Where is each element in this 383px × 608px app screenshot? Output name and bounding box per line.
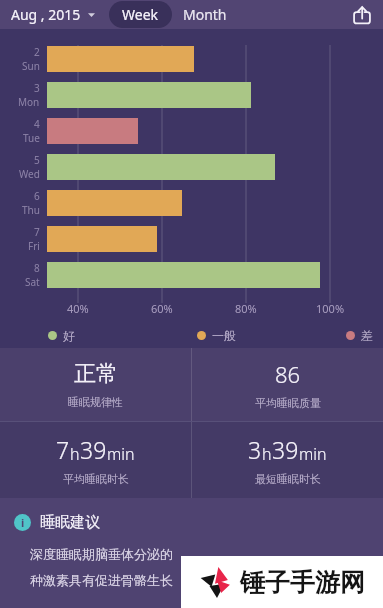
button[interactable]: 6 (0, 185, 383, 221)
staticText: Aug , 2015 (11, 5, 81, 24)
staticText: h (70, 443, 80, 465)
button[interactable]: 8 (0, 257, 383, 293)
button[interactable]: 2 (0, 41, 383, 77)
staticText: 39 (80, 434, 107, 465)
staticText: 7 (34, 225, 40, 239)
staticText: 好 (63, 328, 75, 342)
staticText: i (21, 515, 25, 530)
staticText: 80% (235, 301, 257, 316)
staticText: h (262, 443, 272, 465)
staticText: Wed (19, 167, 40, 181)
button[interactable]: 4 (0, 113, 383, 149)
staticText: 5 (34, 153, 40, 167)
button[interactable]: Week (109, 1, 172, 28)
button[interactable]: 86 (192, 348, 383, 421)
staticText: 100% (316, 301, 345, 316)
staticText: 睡眠建议 (40, 513, 100, 532)
button[interactable]: Month (172, 1, 238, 28)
staticText: Fri (28, 239, 40, 253)
button[interactable]: Aug , 2015 (8, 1, 98, 28)
staticText: 平均睡眠质量 (255, 396, 321, 410)
staticText: Thu (22, 203, 40, 217)
button[interactable]: Share (345, 0, 379, 29)
staticText: Sun (22, 59, 40, 73)
staticText: Tue (23, 131, 40, 145)
button[interactable]: 7 (0, 422, 191, 498)
staticText: 40% (67, 301, 89, 316)
button[interactable]: 一般 (197, 328, 236, 342)
staticText: 4 (34, 117, 40, 131)
staticText: 7 (56, 434, 70, 465)
staticText: 8 (34, 261, 40, 275)
staticText: min (107, 443, 135, 465)
staticText: 86 (275, 359, 301, 389)
staticText: 差 (361, 328, 373, 342)
staticText: 正常 (74, 360, 118, 388)
staticText: 60% (151, 301, 173, 316)
staticText: 种激素具有促进骨骼生长 (30, 572, 173, 588)
staticText: 睡眠规律性 (68, 395, 123, 409)
staticText: 平均睡眠时长 (63, 472, 129, 486)
button[interactable]: 3 (192, 422, 383, 498)
staticText: 2 (34, 45, 40, 59)
staticText: 6 (34, 189, 40, 203)
button[interactable]: 3 (0, 77, 383, 113)
staticText: Sat (25, 275, 40, 289)
staticText: 39 (272, 434, 299, 465)
staticText: Month (183, 5, 227, 24)
button[interactable]: 差 (346, 328, 373, 342)
button[interactable]: 5 (0, 149, 383, 185)
button[interactable]: 正常 (0, 348, 191, 421)
staticText: Mon (18, 95, 40, 109)
button[interactable]: 好 (48, 328, 75, 342)
staticText: min (299, 443, 327, 465)
button[interactable]: i (0, 513, 383, 532)
staticText: 3 (34, 81, 40, 95)
button[interactable]: 7 (0, 221, 383, 257)
staticText: 一般 (212, 328, 236, 342)
staticText: 3 (248, 434, 262, 465)
staticText: 锤子手游网 (240, 567, 365, 598)
staticText: 深度睡眠期脑垂体分泌的 (30, 546, 173, 562)
staticText: 最短睡眠时长 (255, 472, 321, 486)
staticText: Week (122, 5, 159, 24)
